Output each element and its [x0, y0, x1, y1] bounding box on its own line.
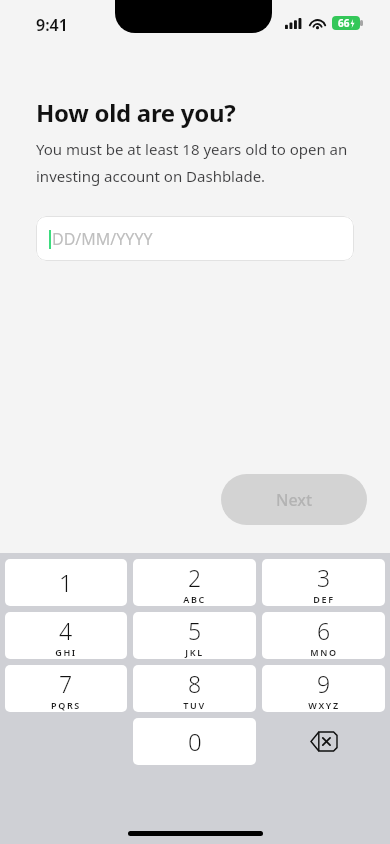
- staticText: DEF: [313, 593, 335, 605]
- staticText: PQRS: [51, 699, 81, 711]
- staticText: 2: [188, 562, 202, 593]
- staticText: 4: [59, 615, 73, 646]
- button[interactable]: 0: [133, 718, 256, 765]
- button[interactable]: Next: [221, 474, 367, 525]
- staticText: JKL: [185, 646, 204, 658]
- staticText: Next: [276, 489, 313, 511]
- staticText: DD/MM/YYYY: [52, 228, 153, 250]
- staticText: You must be at least 18 years old to ope…: [36, 139, 354, 187]
- staticText: 3: [317, 562, 331, 593]
- button[interactable]: 5: [133, 612, 256, 659]
- staticText: TUV: [183, 699, 206, 711]
- staticText: 9:41: [36, 14, 68, 36]
- button[interactable]: 9: [262, 665, 385, 712]
- staticText: 5: [188, 615, 202, 646]
- staticText: 9: [317, 668, 331, 699]
- staticText: 7: [59, 668, 73, 699]
- staticText: MNO: [310, 646, 338, 658]
- button[interactable]: Backspace: [262, 718, 385, 765]
- button[interactable]: DD/MM/YYYY: [36, 216, 354, 261]
- staticText: WXYZ: [308, 699, 340, 711]
- staticText: ABC: [183, 593, 206, 605]
- staticText: How old are you?: [36, 96, 236, 129]
- staticText: 66: [338, 16, 350, 30]
- staticText: GHI: [55, 646, 77, 658]
- staticText: 6: [317, 615, 331, 646]
- button[interactable]: 3: [262, 559, 385, 606]
- staticText: 8: [188, 668, 202, 699]
- button[interactable]: 7: [5, 665, 127, 712]
- button[interactable]: 8: [133, 665, 256, 712]
- staticText: 0: [188, 725, 202, 758]
- button[interactable]: 2: [133, 559, 256, 606]
- button[interactable]: 6: [262, 612, 385, 659]
- button[interactable]: 1: [5, 559, 127, 606]
- staticText: 1: [59, 566, 73, 599]
- button[interactable]: 4: [5, 612, 127, 659]
